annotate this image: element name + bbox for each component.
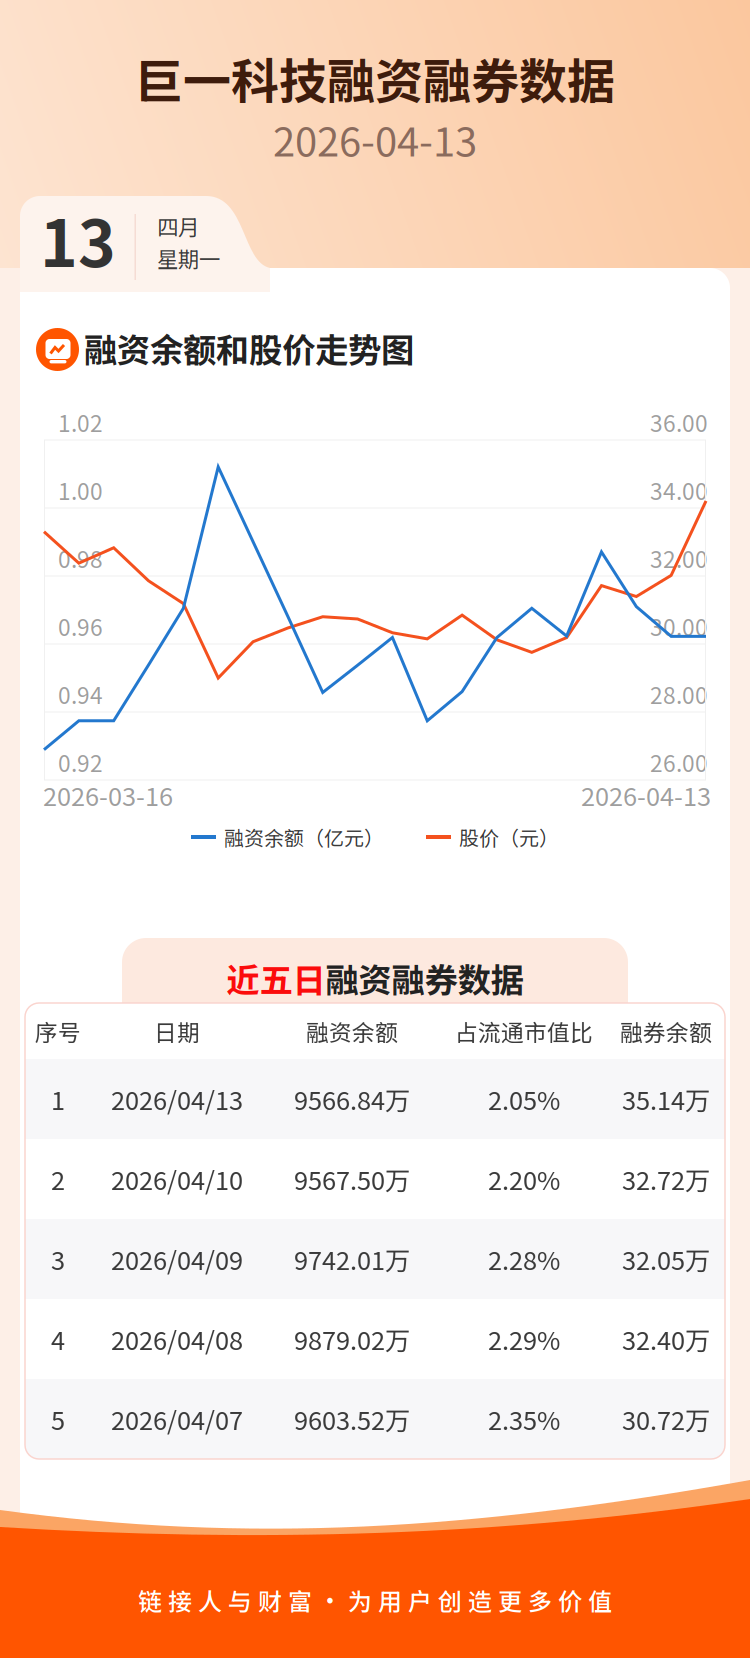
staticText: 2026-04-13 [581,777,711,813]
staticText: 0.96 [58,610,103,642]
staticText: 融资融券数据 [325,954,523,1002]
staticText: 0.92 [58,746,103,778]
staticText: 融资余额（亿元） [224,822,384,851]
staticText: 34.00 [650,474,708,506]
staticText: 巨一科技融资融券数据 [135,43,615,113]
staticText: 融资余额和股价走势图 [84,324,414,372]
staticText: 2026-03-16 [43,777,173,813]
staticText: 1.02 [58,406,103,438]
staticText: 2.20% [488,1161,560,1197]
staticText: 32.40万 [622,1321,710,1357]
staticText: 32.05万 [622,1241,710,1277]
staticText: 四月 [157,211,199,241]
staticText: 28.00 [650,678,708,710]
staticText: 9603.52万 [294,1401,410,1437]
staticText: 2026/04/08 [111,1321,243,1357]
staticText: 9566.84万 [294,1081,410,1117]
staticText: 2.35% [488,1401,560,1437]
staticText: 占流通市值比 [455,1015,593,1047]
staticText: 2.29% [488,1321,560,1357]
staticText: 30.00 [650,610,708,642]
staticText: 1.00 [58,474,103,506]
staticText: 股价（元） [459,822,559,851]
staticText: 2026/04/13 [111,1081,243,1117]
staticText: 近五日 [226,954,325,1002]
staticText: 2 [51,1161,65,1197]
staticText: 4 [51,1321,65,1357]
staticText: 9742.01万 [294,1241,410,1277]
staticText: 2026/04/09 [111,1241,243,1277]
staticText: 2026/04/10 [111,1161,243,1197]
staticText: 0.98 [58,542,103,574]
staticText: 融资余额 [306,1015,398,1047]
staticText: 融券余额 [620,1015,712,1047]
staticText: 2026/04/07 [111,1401,243,1437]
staticText: 13 [40,193,116,285]
staticText: 32.00 [650,542,708,574]
staticText: 30.72万 [622,1401,710,1437]
staticText: 32.72万 [622,1161,710,1197]
staticText: 9567.50万 [294,1161,410,1197]
staticText: 星期一 [157,243,220,273]
staticText: 序号 [35,1015,81,1047]
staticText: 日期 [154,1015,200,1047]
staticText: 链接人与财富·为用户创造更多价值 [138,1583,612,1617]
staticText: 1 [51,1081,65,1117]
staticText: 5 [51,1401,65,1437]
staticText: 2.28% [488,1241,560,1277]
staticText: 36.00 [650,406,708,438]
staticText: 26.00 [650,746,708,778]
staticText: 0.94 [58,678,103,710]
staticText: 9879.02万 [294,1321,410,1357]
staticText: 3 [51,1241,65,1277]
staticText: 2.05% [488,1081,560,1117]
staticText: 2026-04-13 [273,110,477,168]
staticText: 35.14万 [622,1081,710,1117]
